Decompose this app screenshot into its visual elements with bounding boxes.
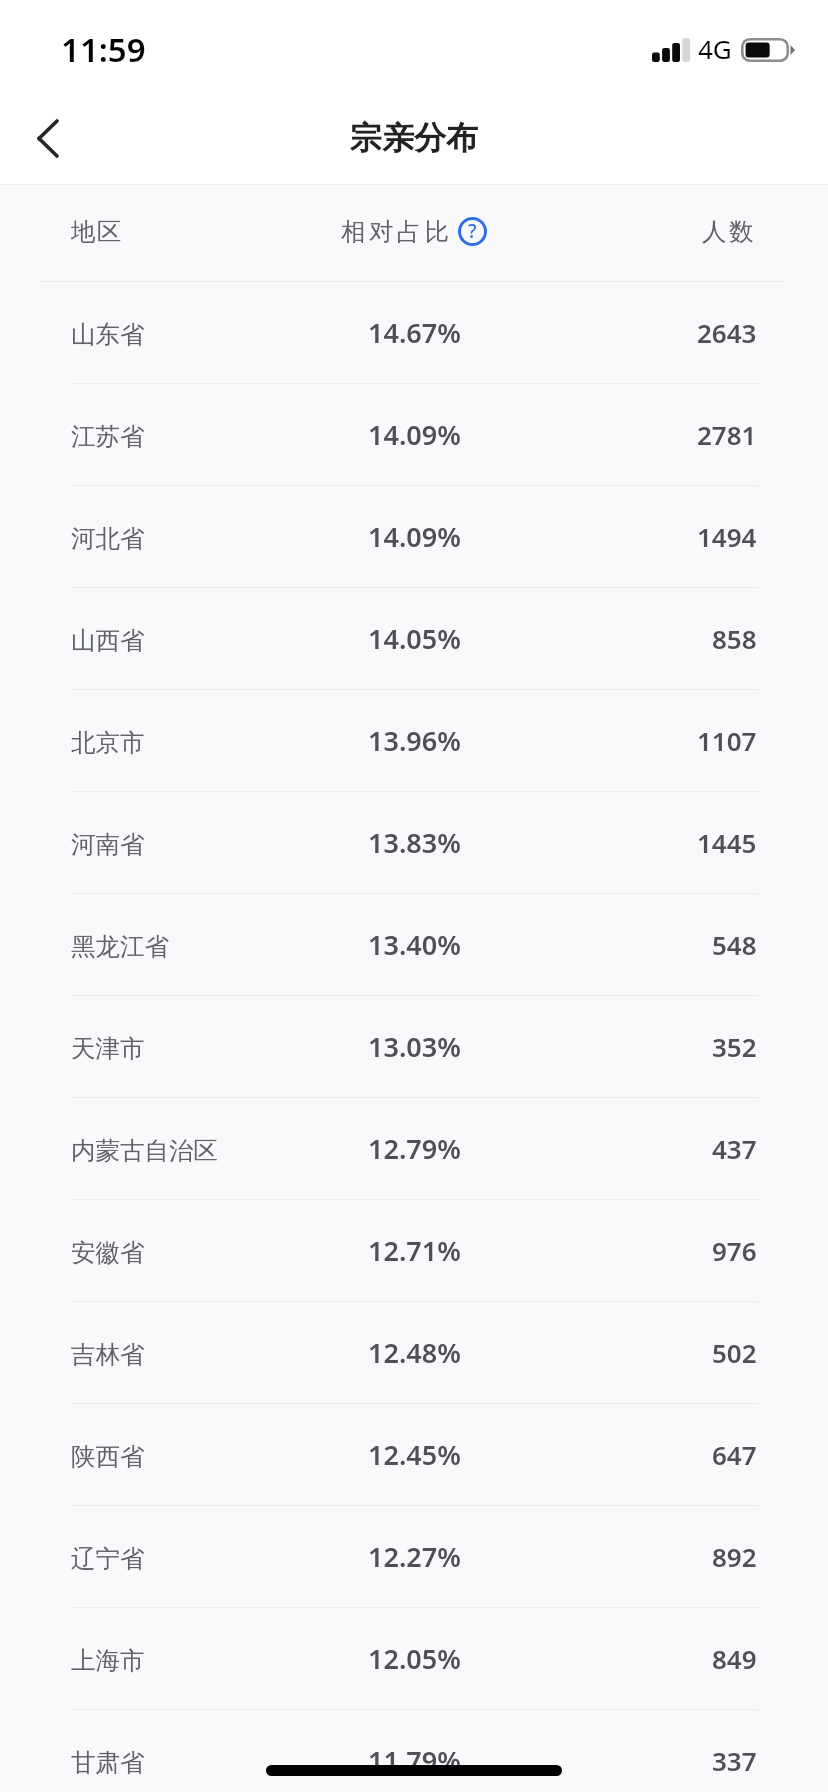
button[interactable]: 上海市 <box>0 1608 828 1710</box>
staticText: 宗亲分布 <box>350 118 478 158</box>
staticText: 人数 <box>702 216 757 247</box>
button[interactable]: 内蒙古自治区 <box>0 1098 828 1200</box>
staticText: 12.79% <box>368 1130 461 1167</box>
staticText: 河南省 <box>71 829 145 860</box>
button[interactable]: 山西省 <box>0 588 828 690</box>
staticText: 山西省 <box>71 625 145 656</box>
staticText: 892 <box>712 1539 757 1574</box>
button[interactable]: 江苏省 <box>0 384 828 486</box>
button[interactable]: 北京市 <box>0 690 828 792</box>
staticText: 地区 <box>71 216 124 247</box>
staticText: 502 <box>712 1335 757 1370</box>
staticText: 13.03% <box>368 1028 461 1065</box>
staticText: 相对占比 <box>341 216 453 247</box>
staticText: 548 <box>712 927 757 962</box>
staticText: 2781 <box>697 417 757 452</box>
staticText: 2643 <box>697 315 757 350</box>
staticText: 12.05% <box>368 1640 461 1677</box>
button[interactable]: 黑龙江省 <box>0 894 828 996</box>
staticText: 1445 <box>697 825 757 860</box>
staticText: 山东省 <box>71 319 145 350</box>
button[interactable]: 山东省 <box>0 282 828 384</box>
button[interactable]: Back <box>8 98 88 178</box>
staticText: 13.40% <box>368 926 461 963</box>
button[interactable]: 辽宁省 <box>0 1506 828 1608</box>
staticText: 12.45% <box>368 1436 461 1473</box>
staticText: 4G <box>698 31 732 66</box>
staticText: 1494 <box>697 519 757 554</box>
button[interactable]: 河南省 <box>0 792 828 894</box>
button[interactable]: 安徽省 <box>0 1200 828 1302</box>
button[interactable]: 甘肃省 <box>0 1710 828 1792</box>
staticText: 12.27% <box>368 1538 461 1575</box>
staticText: 河北省 <box>71 523 145 554</box>
staticText: 江苏省 <box>71 421 145 452</box>
staticText: 天津市 <box>71 1033 145 1064</box>
staticText: 11:59 <box>61 27 146 72</box>
staticText: 337 <box>712 1743 757 1778</box>
staticText: 黑龙江省 <box>71 931 169 962</box>
staticText: 内蒙古自治区 <box>71 1135 218 1166</box>
staticText: 13.83% <box>368 824 461 861</box>
button[interactable]: 陕西省 <box>0 1404 828 1506</box>
staticText: 上海市 <box>71 1645 145 1676</box>
button[interactable]: 河北省 <box>0 486 828 588</box>
staticText: 辽宁省 <box>71 1543 145 1574</box>
staticText: 647 <box>712 1437 757 1472</box>
staticText: 13.96% <box>368 722 461 759</box>
staticText: 甘肃省 <box>71 1747 145 1778</box>
staticText: 14.05% <box>368 620 461 657</box>
staticText: 陕西省 <box>71 1441 145 1472</box>
staticText: 吉林省 <box>71 1339 145 1370</box>
button[interactable]: 天津市 <box>0 996 828 1098</box>
staticText: ? <box>468 218 477 244</box>
staticText: 11.79% <box>368 1742 461 1779</box>
staticText: 976 <box>712 1233 757 1268</box>
staticText: 14.67% <box>368 314 461 351</box>
staticText: 14.09% <box>368 416 461 453</box>
button[interactable]: Help <box>458 217 487 246</box>
staticText: 12.48% <box>368 1334 461 1371</box>
staticText: 北京市 <box>71 727 145 758</box>
staticText: 437 <box>712 1131 757 1166</box>
staticText: 858 <box>712 621 757 656</box>
staticText: 849 <box>712 1641 757 1676</box>
staticText: 14.09% <box>368 518 461 555</box>
staticText: 1107 <box>697 723 757 758</box>
staticText: 12.71% <box>368 1232 461 1269</box>
staticText: 352 <box>712 1029 757 1064</box>
button[interactable]: 吉林省 <box>0 1302 828 1404</box>
staticText: 安徽省 <box>71 1237 145 1268</box>
